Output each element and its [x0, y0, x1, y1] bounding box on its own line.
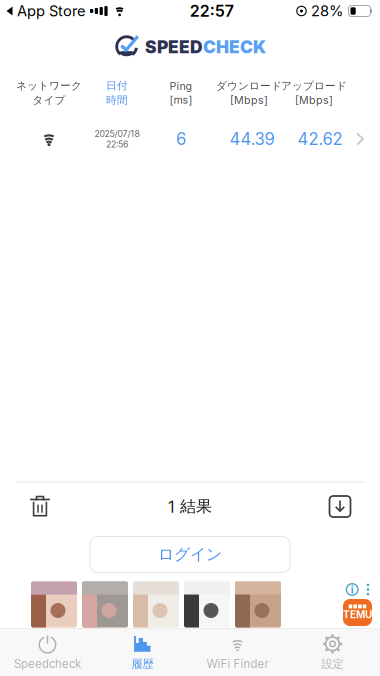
staticText: Ping — [169, 80, 192, 92]
staticText: ネットワーク — [16, 79, 82, 92]
staticText: タイプ — [32, 93, 65, 107]
staticText: App Store — [13, 2, 86, 20]
staticText: アップロード — [281, 79, 347, 93]
button[interactable]: Speedcheck — [0, 630, 95, 674]
staticText: [Mbps] — [295, 94, 333, 107]
staticText: 6 — [176, 129, 186, 149]
button[interactable]: 履歴 — [95, 630, 190, 674]
button[interactable]: 設定 — [285, 630, 380, 674]
staticText: [Mbps] — [230, 94, 268, 107]
staticText: 設定 — [321, 657, 343, 671]
staticText: 履歴 — [131, 657, 153, 671]
button[interactable]: Delete all results — [18, 484, 62, 528]
staticText: SPEED — [145, 36, 203, 57]
staticText: Speedcheck — [14, 657, 81, 671]
button[interactable]: 2025/07/18 — [0, 118, 380, 160]
staticText: 22:56 — [106, 139, 128, 149]
staticText: 44.39 — [229, 129, 274, 149]
button[interactable]: Export results — [318, 484, 362, 528]
staticText: ダウンロード — [216, 79, 282, 93]
staticText: TEMU — [343, 608, 372, 621]
staticText: 2025/07/18 — [94, 128, 139, 139]
button[interactable]: WiFi Finder — [190, 630, 285, 674]
staticText: 42.62 — [297, 129, 342, 149]
staticText: 22:57 — [190, 1, 234, 21]
staticText: 28% — [307, 2, 343, 20]
staticText: 時間 — [106, 93, 128, 107]
staticText: i — [351, 583, 354, 596]
staticText: WiFi Finder — [206, 657, 268, 671]
staticText: 日付 — [106, 79, 128, 92]
button[interactable]: ログイン — [90, 536, 290, 572]
staticText: [ms] — [169, 93, 192, 106]
staticText: ログイン — [158, 544, 222, 565]
staticText: 1 結果 — [168, 496, 212, 517]
button[interactable]: TEMU advertisement — [0, 580, 380, 628]
staticText: CHECK — [203, 36, 266, 57]
